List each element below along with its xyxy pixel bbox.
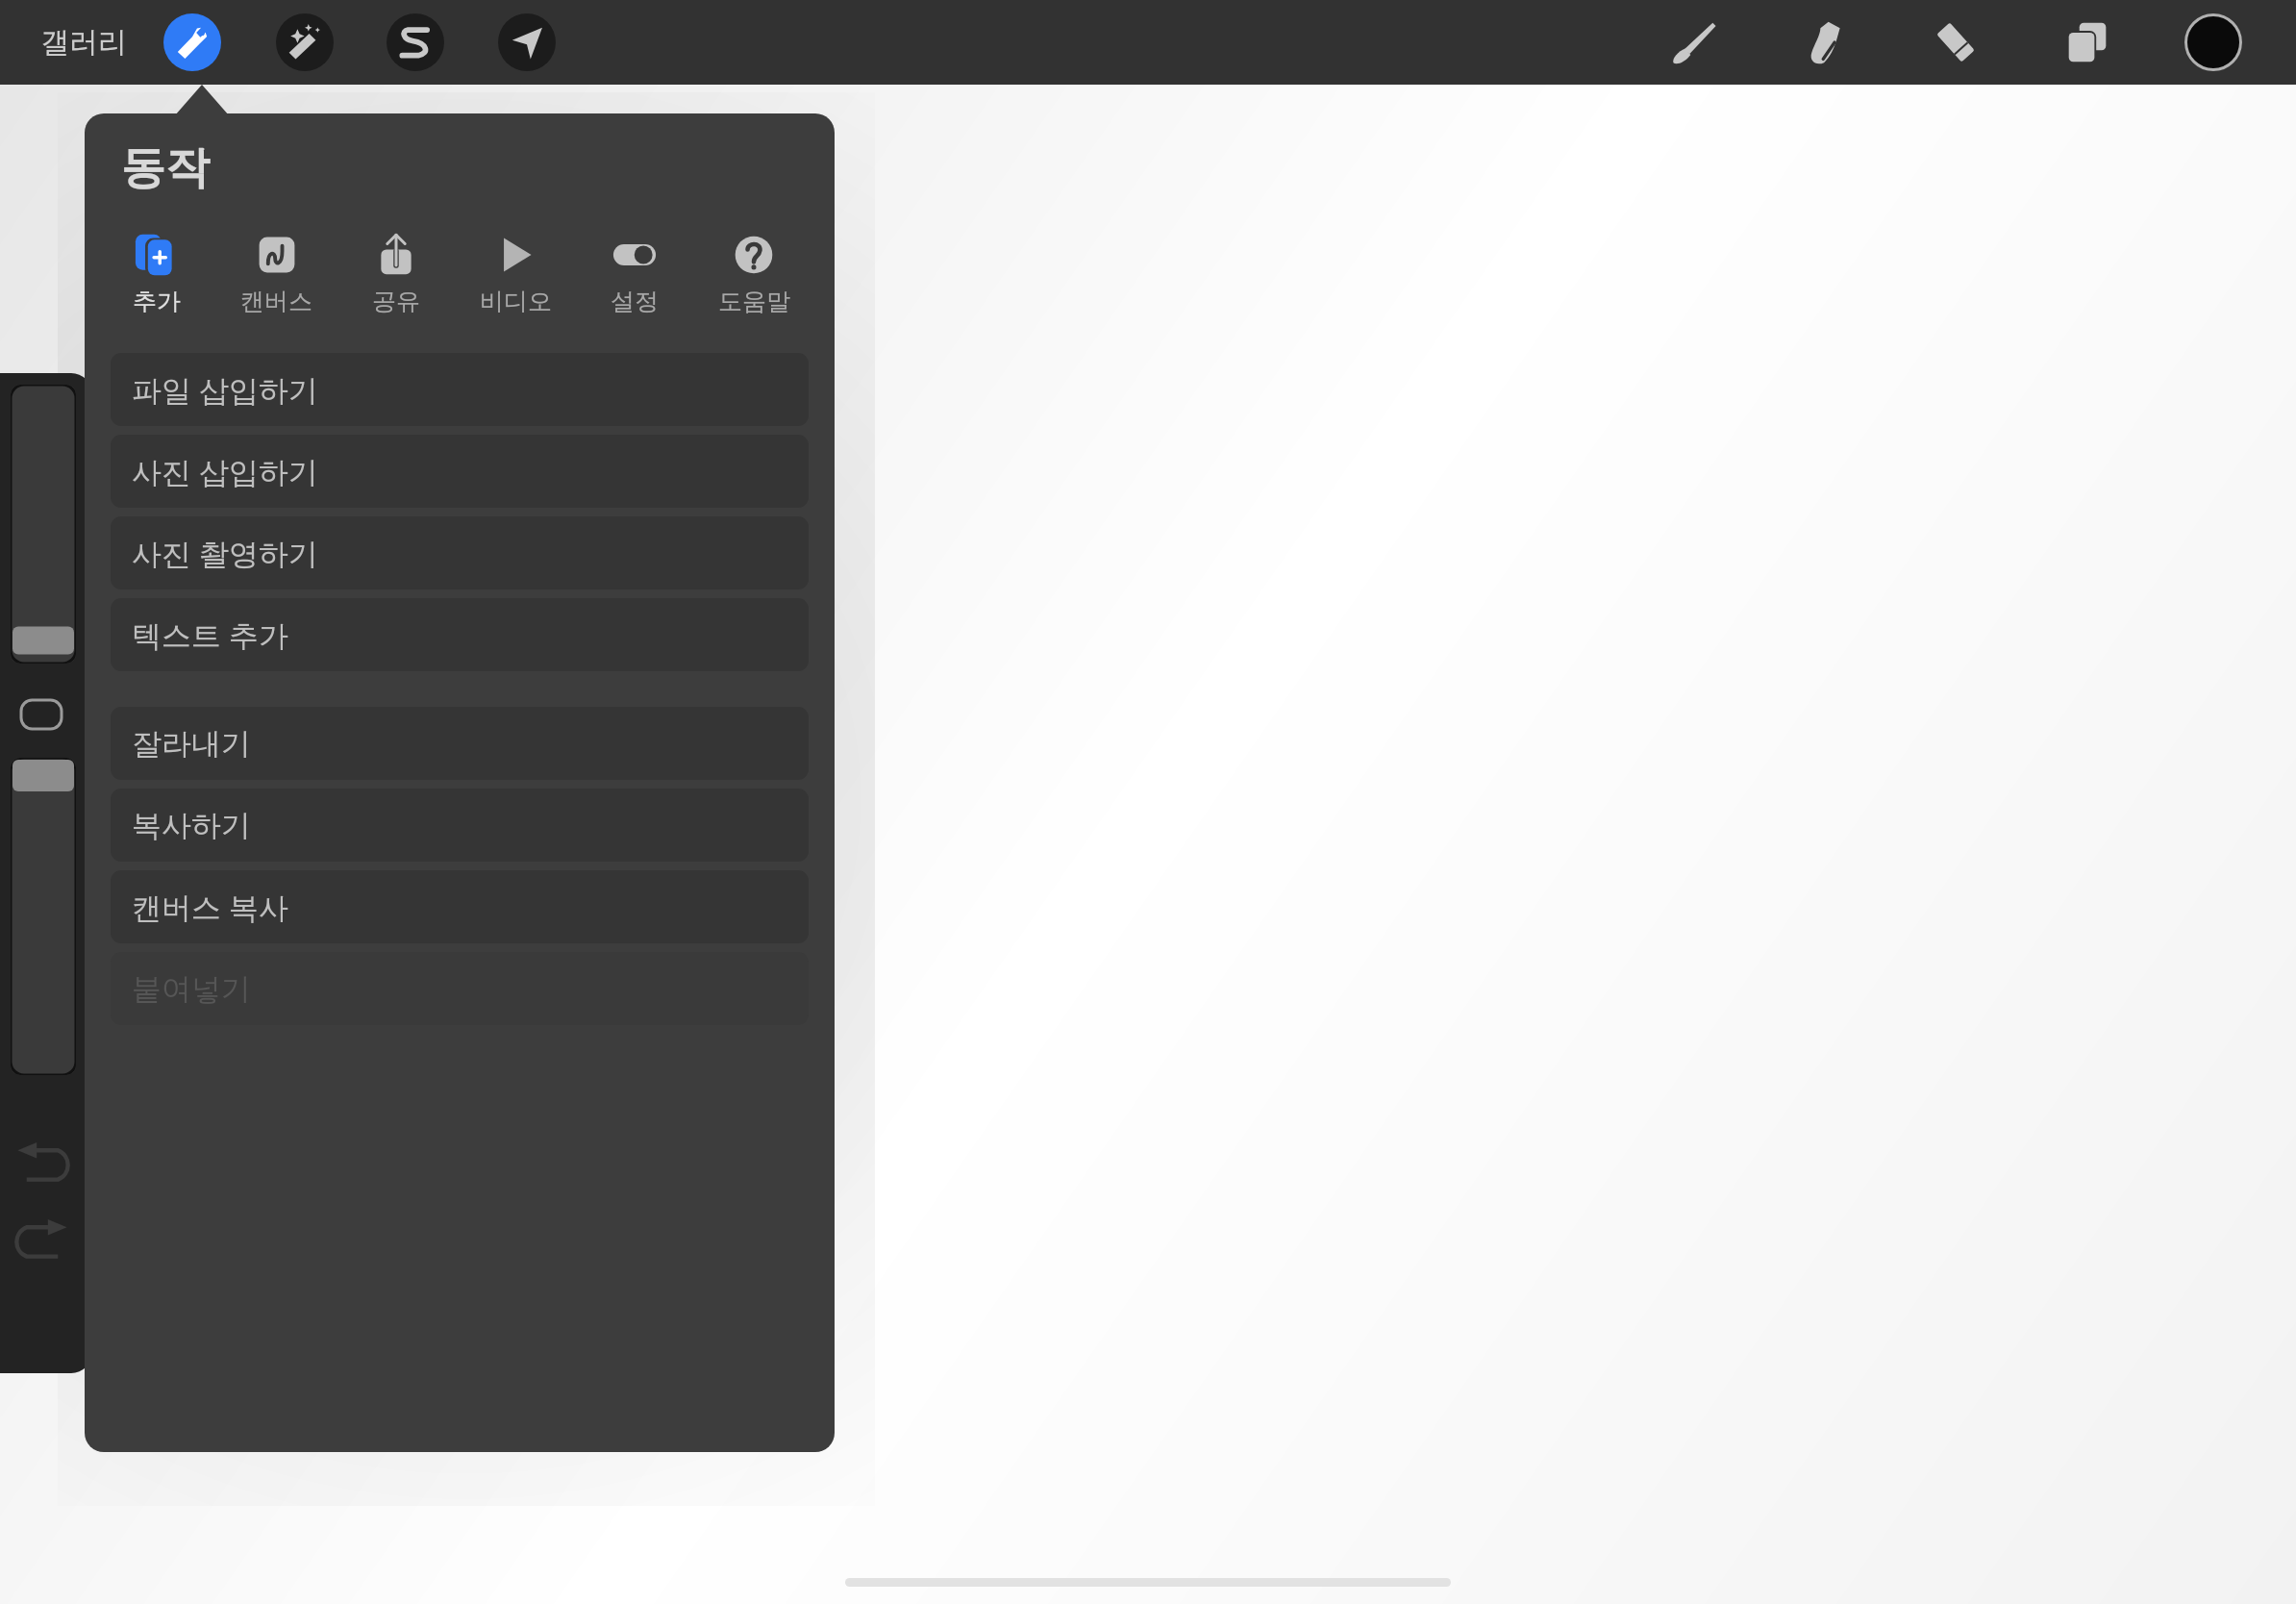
button[interactable]: Smudge: [1792, 10, 1858, 75]
button[interactable]: Adjustments: [276, 13, 334, 71]
button[interactable]: Paint: [1661, 10, 1727, 75]
staticText: 사진 삽입하기: [132, 451, 319, 491]
button[interactable]: 파일 삽입하기: [111, 353, 809, 426]
button[interactable]: 붙여넣기: [111, 952, 809, 1025]
staticText: 캔버스 복사: [132, 887, 289, 927]
button[interactable]: 사진 촬영하기: [111, 516, 809, 589]
staticText: 사진 촬영하기: [132, 533, 319, 573]
staticText: 비디오: [480, 287, 552, 316]
button[interactable]: 설정: [575, 227, 694, 322]
button[interactable]: 도움말: [694, 227, 813, 322]
button[interactable]: Transform: [498, 13, 556, 71]
staticText: 캔버스: [240, 287, 312, 316]
staticText: 설정: [611, 287, 659, 316]
staticText: 공유: [372, 287, 420, 316]
button[interactable]: 복사하기: [111, 789, 809, 862]
button[interactable]: 캔버스 복사: [111, 870, 809, 943]
staticText: 텍스트 추가: [132, 614, 289, 655]
staticText: 동작: [121, 140, 210, 196]
button[interactable]: Erase: [1923, 10, 1988, 75]
button[interactable]: Undo: [6, 1133, 79, 1196]
staticText: 추가: [133, 287, 181, 316]
button[interactable]: 캔버스: [216, 227, 337, 322]
staticText: 도움말: [718, 287, 790, 316]
staticText: 잘라내기: [132, 725, 251, 763]
staticText: 붙여넣기: [132, 970, 251, 1008]
button[interactable]: Redo: [6, 1210, 79, 1273]
button[interactable]: 공유: [337, 227, 456, 322]
staticText: 파일 삽입하기: [132, 369, 319, 410]
button[interactable]: 추가: [96, 227, 216, 322]
button[interactable]: Actions: [163, 13, 221, 71]
button[interactable]: Color: [2184, 13, 2242, 71]
staticText: 갤러리: [40, 24, 127, 61]
button[interactable]: Modify: [21, 700, 62, 729]
button[interactable]: Slider: [11, 385, 76, 664]
button[interactable]: 갤러리: [27, 0, 140, 85]
button[interactable]: Layers: [2055, 10, 2120, 75]
button[interactable]: 사진 삽입하기: [111, 435, 809, 508]
button[interactable]: Slider: [11, 758, 76, 1075]
staticText: 복사하기: [132, 807, 251, 844]
button[interactable]: Selection: [387, 13, 444, 71]
button[interactable]: 텍스트 추가: [111, 598, 809, 671]
button[interactable]: 비디오: [456, 227, 575, 322]
button[interactable]: 잘라내기: [111, 707, 809, 780]
